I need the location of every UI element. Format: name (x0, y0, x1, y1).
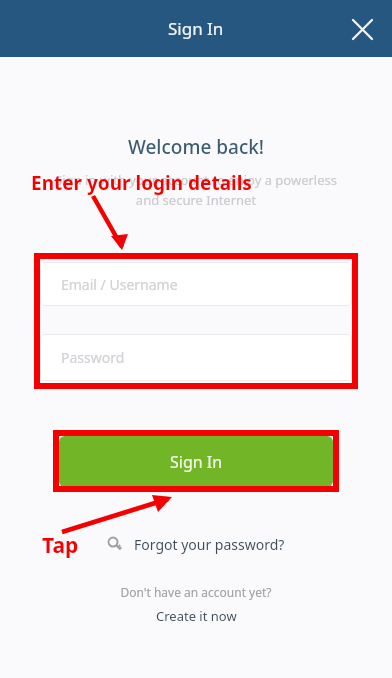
staticText: Create it now (156, 607, 237, 625)
staticText: Sign in with your account to enjoy a pow… (30, 171, 362, 209)
staticText: Password (61, 348, 125, 367)
button[interactable]: Create it now (150, 605, 243, 627)
button[interactable]: Email / Username (40, 262, 352, 306)
staticText: Don't have an account yet? (0, 584, 392, 600)
staticText: Tap (42, 531, 79, 560)
staticText: Enter your login details (31, 170, 252, 196)
button[interactable]: Password (40, 334, 352, 381)
staticText: Welcome back! (0, 134, 392, 160)
button[interactable]: Forgot your password? (102, 531, 291, 558)
staticText: Sign In (170, 451, 223, 473)
button[interactable]: Close (338, 5, 386, 53)
staticText: Email / Username (61, 275, 178, 294)
button[interactable]: Sign In (59, 436, 333, 487)
staticText: Sign In (168, 17, 224, 40)
staticText: Forgot your password? (134, 535, 285, 554)
